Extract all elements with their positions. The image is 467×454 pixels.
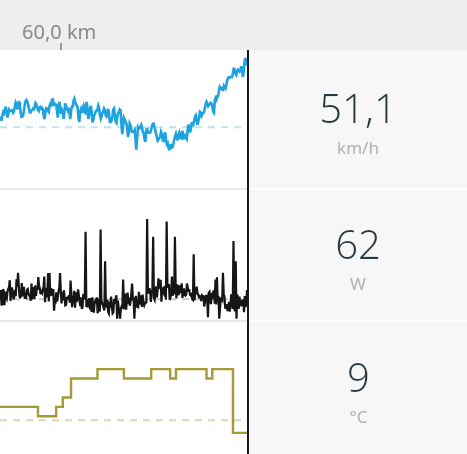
- staticText: km/h: [337, 136, 379, 159]
- button[interactable]: Speed chart: [0, 50, 247, 188]
- staticText: 9: [347, 349, 370, 403]
- staticText: 62: [335, 216, 381, 270]
- button[interactable]: 62: [249, 190, 467, 320]
- staticText: 51,1: [319, 80, 397, 134]
- staticText: 60,0 km: [22, 18, 97, 45]
- button[interactable]: 9: [249, 322, 467, 454]
- button[interactable]: Power chart: [0, 190, 247, 320]
- staticText: W: [350, 272, 366, 295]
- button[interactable]: 51,1: [249, 50, 467, 188]
- staticText: °C: [349, 405, 368, 428]
- button[interactable]: Temperature chart: [0, 322, 247, 454]
